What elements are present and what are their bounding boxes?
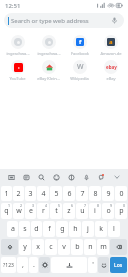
button[interactable]: Search <box>36 172 46 182</box>
staticText: 9 <box>106 189 111 199</box>
button[interactable]: 7 <box>76 186 88 201</box>
button[interactable]: x <box>32 239 44 255</box>
button[interactable]: f <box>43 221 55 237</box>
button[interactable]: l <box>108 221 120 237</box>
button[interactable]: s <box>19 221 30 237</box>
button[interactable]: 5 <box>50 186 62 201</box>
button[interactable]: Space <box>51 257 87 273</box>
staticText: 8 <box>97 203 100 208</box>
button[interactable]: h <box>69 221 81 237</box>
button[interactable]: ingeschwa... <box>33 34 64 57</box>
button[interactable]: ebay <box>95 59 126 82</box>
button[interactable]: , <box>17 257 28 273</box>
button[interactable]: o <box>102 203 114 219</box>
button[interactable]: y <box>19 239 31 255</box>
staticText: W <box>77 62 84 72</box>
button[interactable]: ingeschwa... <box>2 34 33 57</box>
staticText: 5 <box>58 203 61 208</box>
button[interactable]: j <box>82 221 94 237</box>
button[interactable]: g <box>56 221 68 237</box>
button[interactable]: Umlaut <box>98 257 109 273</box>
staticText: s <box>23 224 27 234</box>
button[interactable]: Backspace <box>110 239 127 255</box>
button[interactable]: Shift <box>1 239 18 255</box>
button[interactable]: b <box>71 239 83 255</box>
button[interactable]: 1 <box>1 186 12 201</box>
button[interactable]: u <box>76 203 88 219</box>
button[interactable]: e <box>25 203 36 219</box>
button[interactable]: z <box>63 203 75 219</box>
button[interactable]: Settings <box>39 257 50 273</box>
button[interactable]: t <box>50 203 62 219</box>
staticText: Facebook <box>71 51 89 56</box>
button[interactable]: ' <box>88 257 97 273</box>
button[interactable]: GIF <box>66 172 76 182</box>
staticText: 8 <box>93 189 98 199</box>
staticText: ?123 <box>3 262 14 269</box>
button[interactable]: k <box>95 221 107 237</box>
staticText: i <box>94 206 96 216</box>
button[interactable]: v <box>58 239 70 255</box>
staticText: 0 <box>123 203 126 208</box>
button[interactable]: Clipboard <box>21 172 31 182</box>
staticText: Amazon.de <box>100 51 122 56</box>
button[interactable]: YouTube <box>2 59 33 82</box>
staticText: x <box>36 242 40 252</box>
button[interactable]: m <box>97 239 109 255</box>
staticText: o <box>106 206 111 216</box>
button[interactable]: f <box>64 34 95 57</box>
staticText: j <box>87 224 89 234</box>
button[interactable]: q <box>1 203 12 219</box>
staticText: 3 <box>28 189 33 199</box>
staticText: Los <box>114 262 123 269</box>
button[interactable]: Emoji <box>51 172 61 182</box>
button[interactable]: Sticker <box>96 172 106 182</box>
staticText: 9 <box>110 203 113 208</box>
button[interactable]: c <box>45 239 57 255</box>
staticText: ingeschwa... <box>6 51 30 56</box>
button[interactable]: ?123 <box>1 257 16 273</box>
button[interactable]: 6 <box>63 186 75 201</box>
staticText: f <box>79 38 82 46</box>
staticText: . <box>33 260 35 270</box>
staticText: 12:51 <box>5 2 21 10</box>
button[interactable]: Voice search <box>110 16 119 25</box>
staticText: 3 <box>32 203 35 208</box>
staticText: f <box>48 224 51 234</box>
button[interactable]: r <box>37 203 49 219</box>
button[interactable]: Go <box>110 257 127 273</box>
staticText: v <box>62 242 66 252</box>
button[interactable]: W <box>64 59 95 82</box>
button[interactable]: Search or type web address <box>4 13 124 28</box>
staticText: n <box>88 242 93 252</box>
staticText: 4 <box>41 189 46 199</box>
staticText: 2 <box>20 203 23 208</box>
button[interactable]: 2 <box>13 186 24 201</box>
button[interactable]: Keyboard switch <box>6 172 16 182</box>
button[interactable]: a <box>7 221 18 237</box>
staticText: c <box>49 242 53 252</box>
button[interactable]: a <box>95 34 126 57</box>
button[interactable]: d <box>31 221 42 237</box>
staticText: ebay <box>106 64 117 70</box>
button[interactable]: 9 <box>102 186 114 201</box>
staticText: e <box>29 206 33 216</box>
button[interactable]: n <box>84 239 96 255</box>
button[interactable]: 4 <box>37 186 49 201</box>
button[interactable]: . <box>29 257 38 273</box>
button[interactable]: 3 <box>25 186 36 201</box>
staticText: g <box>60 224 65 234</box>
button[interactable]: i <box>89 203 101 219</box>
button[interactable]: w <box>13 203 24 219</box>
button[interactable]: 0 <box>115 186 127 201</box>
button[interactable]: Voice input <box>81 172 91 182</box>
staticText: t <box>55 206 58 216</box>
staticText: m <box>100 242 107 252</box>
button[interactable]: p <box>115 203 127 219</box>
staticText: h <box>73 224 78 234</box>
staticText: Search or type web address <box>11 17 89 25</box>
button[interactable]: 8 <box>89 186 101 201</box>
staticText: , <box>22 260 24 270</box>
button[interactable]: eBay Klein... <box>33 59 64 82</box>
button[interactable]: Collapse toolbar <box>112 172 122 182</box>
